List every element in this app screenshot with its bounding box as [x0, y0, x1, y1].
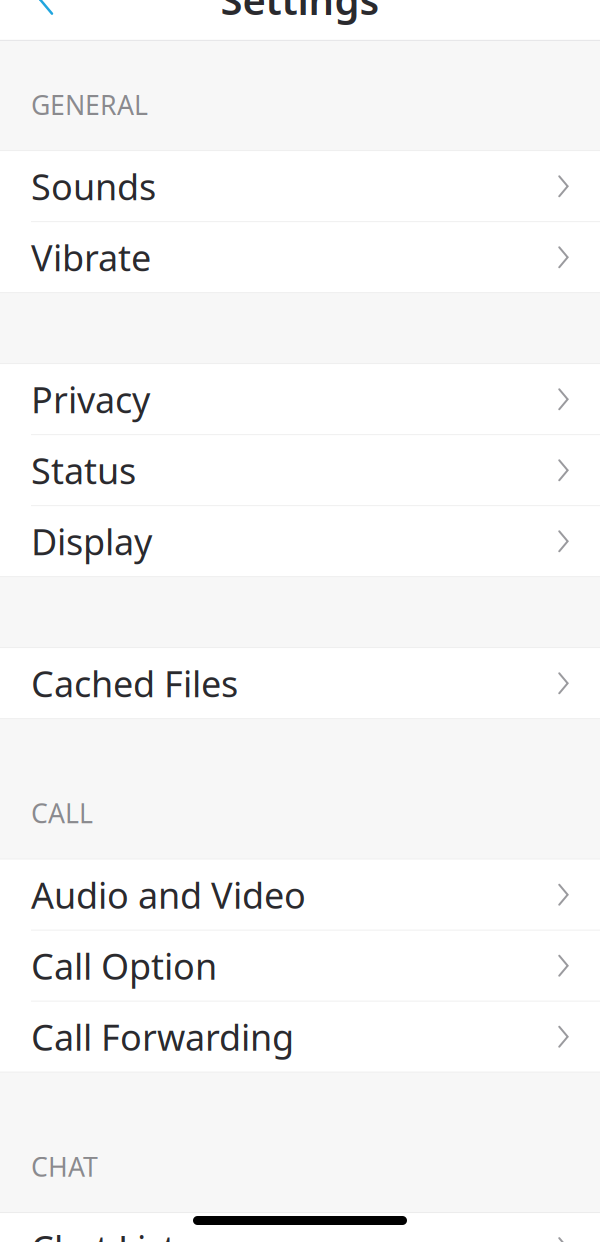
staticText: Audio and Video	[31, 871, 306, 919]
staticText: Status	[31, 446, 136, 494]
button[interactable]: Privacy	[0, 364, 600, 434]
button[interactable]: Display	[0, 506, 600, 576]
button[interactable]: Sounds	[0, 151, 600, 221]
staticText: Vibrate	[31, 233, 151, 281]
staticText: GENERAL	[31, 87, 148, 122]
staticText: Cached Files	[31, 659, 238, 707]
staticText: Display	[31, 517, 152, 565]
staticText: Sounds	[31, 162, 156, 210]
button[interactable]: Audio and Video	[0, 860, 600, 930]
staticText: Call Forwarding	[31, 1013, 294, 1061]
staticText: Settings	[220, 0, 379, 26]
button[interactable]: Vibrate	[0, 222, 600, 292]
button[interactable]: Call Option	[0, 931, 600, 1001]
staticText: Privacy	[31, 375, 150, 423]
button[interactable]: Cached Files	[0, 648, 600, 718]
button[interactable]: Chat List	[0, 1213, 600, 1242]
button[interactable]: Call Forwarding	[0, 1002, 600, 1072]
staticText: Call Option	[31, 942, 217, 990]
staticText: CHAT	[31, 1149, 98, 1184]
staticText: Chat List	[31, 1224, 176, 1242]
staticText: CALL	[31, 795, 93, 831]
button[interactable]: Back	[16, 0, 76, 29]
button[interactable]: Status	[0, 435, 600, 505]
